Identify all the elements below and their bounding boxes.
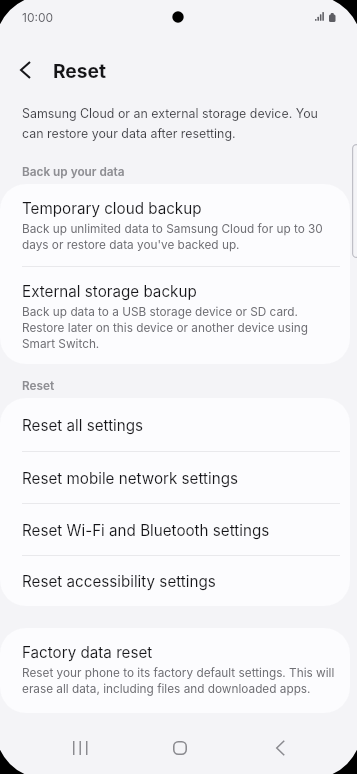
button[interactable]: Home (130, 722, 230, 774)
staticText: External storage backup (22, 282, 197, 300)
button[interactable]: Recent apps (30, 722, 130, 774)
staticText: Back up unlimited data to Samsung Cloud … (22, 222, 338, 252)
button[interactable]: Reset Wi-Fi and Bluetooth settings (0, 504, 350, 555)
staticText: Reset accessibility settings (22, 572, 216, 590)
button[interactable]: Factory data reset (0, 628, 350, 713)
staticText: Reset Wi-Fi and Bluetooth settings (22, 521, 270, 539)
button[interactable]: External storage backup (0, 267, 350, 364)
button[interactable]: Reset mobile network settings (0, 452, 350, 503)
staticText: Reset mobile network settings (22, 469, 238, 487)
staticText: Reset all settings (22, 416, 144, 434)
staticText: Temporary cloud backup (22, 199, 202, 217)
staticText: Reset (22, 379, 55, 393)
staticText: Back up your data (22, 165, 125, 179)
button[interactable]: Reset accessibility settings (0, 556, 350, 606)
staticText: Samsung Cloud or an external storage dev… (22, 106, 324, 141)
button[interactable]: Back (230, 722, 330, 774)
staticText: Back up data to a USB storage device or … (22, 305, 338, 351)
staticText: Reset (53, 59, 106, 82)
button[interactable]: Reset all settings (0, 398, 350, 451)
button[interactable]: Navigate up (11, 52, 48, 89)
staticText: Factory data reset (22, 643, 153, 661)
staticText: 10:00 (22, 10, 54, 25)
button[interactable]: Temporary cloud backup (0, 184, 350, 266)
staticText: Reset your phone to its factory default … (22, 666, 338, 696)
